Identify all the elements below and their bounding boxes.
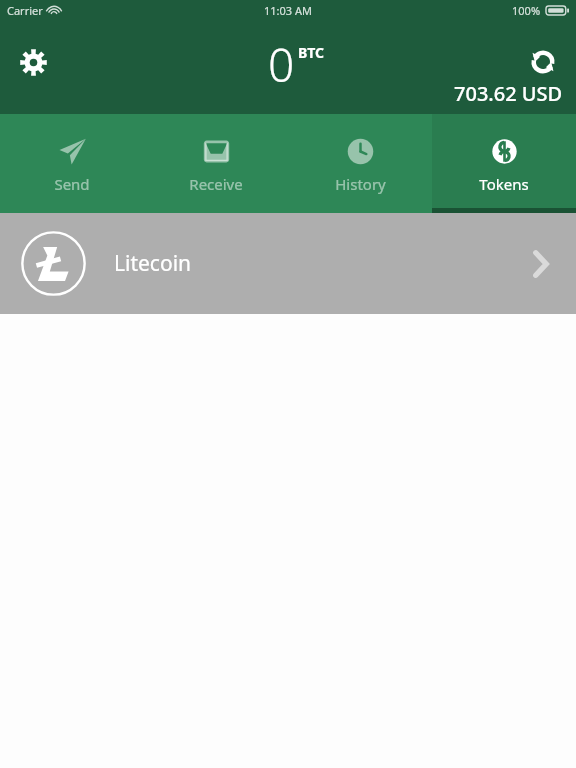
staticText: 11:03 AM <box>264 3 312 18</box>
button[interactable]: Settings <box>11 40 55 84</box>
button[interactable]: Send <box>0 114 144 213</box>
button[interactable]: Receive <box>144 114 288 213</box>
staticText: 100% <box>512 3 541 18</box>
staticText: Receive <box>189 174 243 194</box>
button[interactable]: Tokens <box>432 114 576 213</box>
staticText: 703.62 USD <box>454 80 563 107</box>
staticText: History <box>335 174 386 194</box>
staticText: Tokens <box>479 174 529 194</box>
staticText: Litecoin <box>114 249 192 278</box>
other: Open Litecoin <box>518 241 564 287</box>
button[interactable]: Litecoin <box>0 213 576 314</box>
staticText: 0 <box>268 33 295 96</box>
staticText: BTC <box>298 43 325 62</box>
staticText: Carrier <box>7 3 43 18</box>
button[interactable]: Refresh <box>521 40 565 84</box>
staticText: Send <box>54 174 90 194</box>
button[interactable]: History <box>288 114 432 213</box>
